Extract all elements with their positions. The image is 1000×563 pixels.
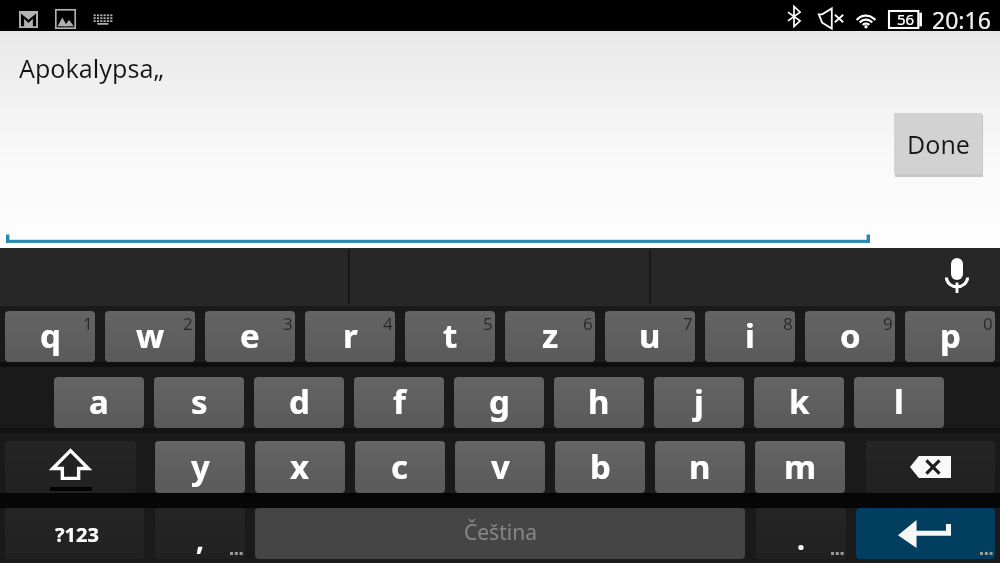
button[interactable]: i (705, 311, 795, 362)
button[interactable]: ?123 (5, 508, 144, 559)
staticText: i (745, 313, 755, 358)
button[interactable]: f (354, 377, 444, 428)
button[interactable]: v (455, 441, 545, 493)
button[interactable]: g (454, 377, 544, 428)
staticText: d (289, 379, 310, 424)
staticText: s (191, 379, 208, 424)
button[interactable]: c (355, 441, 445, 493)
staticText: u (639, 313, 661, 358)
staticText: b (590, 444, 611, 489)
button[interactable]: Shift (5, 441, 136, 493)
staticText: 6 (583, 312, 593, 335)
button[interactable]: w (105, 311, 195, 362)
button[interactable]: y (155, 441, 245, 493)
staticText: 2 (183, 312, 193, 335)
staticText: , (196, 520, 204, 558)
staticText: k (789, 379, 810, 424)
button[interactable]: t (405, 311, 495, 362)
button[interactable]: e (205, 311, 295, 362)
button[interactable]: s (154, 377, 244, 428)
button[interactable]: p (905, 311, 995, 362)
staticText: g (489, 379, 510, 424)
staticText: 0 (983, 312, 993, 335)
staticText: m (784, 444, 817, 489)
button[interactable]: j (654, 377, 744, 428)
staticText: z (542, 313, 559, 358)
staticText: Čeština (464, 518, 537, 547)
staticText: a (89, 379, 109, 424)
staticText: v (491, 444, 510, 489)
staticText: 3 (283, 312, 293, 335)
staticText: w (136, 313, 165, 358)
staticText: r (343, 313, 358, 358)
button[interactable]: x (255, 441, 345, 493)
staticText: h (588, 379, 610, 424)
button[interactable]: Čeština (255, 508, 745, 559)
button[interactable]: Enter (856, 508, 995, 559)
staticText: y (191, 444, 210, 489)
button[interactable]: u (605, 311, 695, 362)
button[interactable]: m (755, 441, 845, 493)
button[interactable]: o (805, 311, 895, 362)
button[interactable]: , (155, 508, 245, 559)
staticText: p (940, 313, 961, 358)
staticText: 8 (783, 312, 793, 335)
staticText: q (40, 313, 61, 358)
staticText: 20:16 (932, 4, 991, 35)
staticText: j (694, 379, 704, 424)
button[interactable]: l (854, 377, 944, 428)
button[interactable]: Backspace (866, 441, 995, 493)
staticText: 5 (483, 312, 493, 335)
button[interactable]: z (505, 311, 595, 362)
staticText: f (393, 379, 406, 424)
staticText: Done (907, 127, 970, 161)
staticText: n (689, 444, 711, 489)
staticText: 1 (83, 312, 93, 335)
button[interactable]: r (305, 311, 395, 362)
staticText: t (443, 313, 458, 358)
staticText: 7 (683, 312, 693, 335)
staticText: l (894, 379, 904, 424)
button[interactable]: q (5, 311, 95, 362)
staticText: 56 (897, 9, 915, 28)
button[interactable]: k (754, 377, 844, 428)
staticText: . (797, 520, 805, 558)
staticText: Apokalypsa„ (19, 51, 164, 85)
staticText: e (240, 313, 260, 358)
button[interactable]: Done (894, 113, 982, 174)
staticText: ?123 (55, 521, 99, 548)
button[interactable]: . (756, 508, 846, 559)
staticText: 4 (383, 312, 393, 335)
button[interactable]: d (254, 377, 344, 428)
button[interactable]: h (554, 377, 644, 428)
staticText: 9 (883, 312, 893, 335)
staticText: x (290, 444, 310, 489)
staticText: o (840, 313, 861, 358)
button[interactable]: Voice input (935, 251, 983, 299)
button[interactable]: b (555, 441, 645, 493)
button[interactable]: n (655, 441, 745, 493)
button[interactable]: a (54, 377, 144, 428)
staticText: c (391, 444, 409, 489)
